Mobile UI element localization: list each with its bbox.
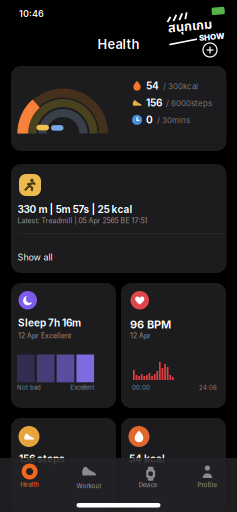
staticText: SHOW (198, 33, 224, 43)
staticText: 156 steps (19, 453, 65, 465)
button[interactable]: 96 BPM (121, 283, 226, 408)
staticText: 12 Apr (130, 331, 151, 340)
staticText: Sleep 7h 16m (18, 317, 81, 329)
button[interactable]: 54 (11, 66, 226, 151)
button[interactable]: Profile (178, 464, 237, 489)
button[interactable] (203, 43, 217, 57)
staticText: 24:06 (199, 384, 217, 391)
staticText: Show all (17, 252, 52, 263)
staticText: Health (97, 36, 139, 52)
button[interactable]: Sleep 7h 16m (11, 283, 116, 408)
button[interactable]: Health (0, 465, 59, 488)
staticText: 0 (146, 114, 153, 126)
staticText: / 300kcal (163, 82, 198, 91)
staticText: 54 kcal (129, 453, 165, 465)
staticText: 96 BPM (130, 318, 171, 331)
staticText: / 6000steps (166, 99, 212, 108)
staticText: Latest: Treadmill | 05 Apr 2565 BE 17:51 (17, 216, 147, 225)
button[interactable]: 330 m | 5m 57s | 25 kcal (11, 164, 226, 273)
button[interactable]: 54 kcal (121, 418, 226, 512)
button[interactable]: Device (118, 464, 178, 489)
button[interactable]: Workout (59, 463, 118, 490)
staticText: Profile (197, 481, 217, 489)
staticText: Not bad (17, 384, 41, 391)
staticText: 00:00 (132, 384, 150, 391)
staticText: 330 m | 5m 57s | 25 kcal (17, 203, 132, 215)
staticText: 12 Apr Excellent (18, 331, 71, 340)
staticText: 156 (146, 97, 162, 109)
staticText: Health (20, 481, 39, 488)
staticText: / 30mins (157, 116, 190, 125)
staticText: Workout (76, 482, 101, 490)
staticText: 54 (146, 80, 159, 92)
staticText: Device (139, 481, 158, 489)
staticText: 10:46 (19, 8, 44, 19)
button[interactable]: 156 steps (11, 418, 116, 512)
staticText: สนุกเกม (168, 16, 212, 36)
staticText: Excellent (70, 384, 94, 391)
